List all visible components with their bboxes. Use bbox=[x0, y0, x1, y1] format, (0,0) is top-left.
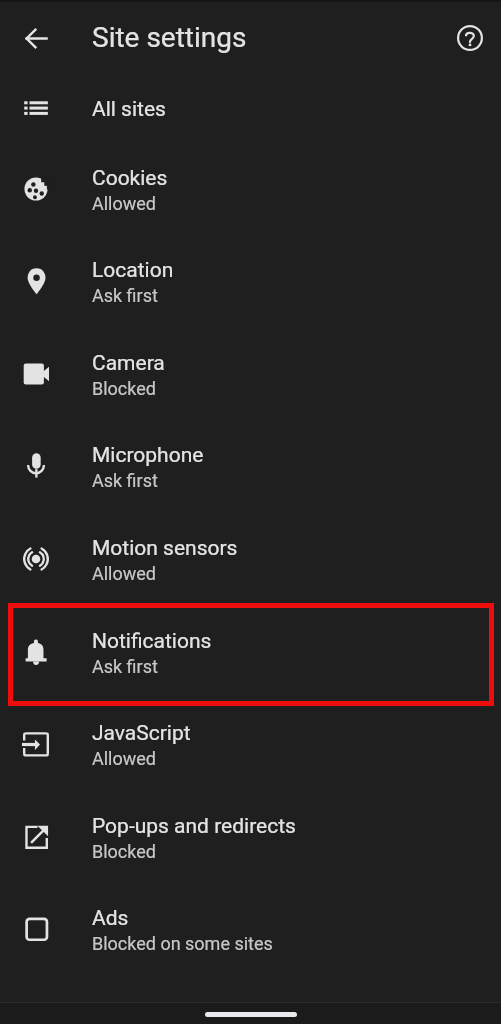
button[interactable]: Help and feedback bbox=[448, 16, 492, 60]
staticText: Microphone bbox=[92, 443, 204, 468]
button[interactable]: Pop-ups and redirects bbox=[0, 790, 501, 883]
button[interactable]: Notifications bbox=[0, 605, 501, 698]
staticText: Motion sensors bbox=[92, 536, 238, 561]
button[interactable]: Camera bbox=[0, 327, 501, 420]
staticText: Ask first bbox=[92, 656, 158, 677]
staticText: Blocked bbox=[92, 841, 156, 862]
staticText: Ask first bbox=[92, 285, 158, 306]
button[interactable]: Navigate up bbox=[14, 16, 58, 60]
staticText: Blocked on some sites bbox=[92, 933, 273, 954]
staticText: JavaScript bbox=[92, 721, 191, 746]
button[interactable]: Motion sensors bbox=[0, 512, 501, 605]
button[interactable]: JavaScript bbox=[0, 697, 501, 790]
button[interactable]: Cookies bbox=[0, 142, 501, 235]
staticText: Notifications bbox=[92, 629, 212, 654]
button[interactable]: Ads bbox=[0, 882, 501, 975]
staticText: Camera bbox=[92, 351, 165, 376]
button[interactable]: All sites bbox=[0, 74, 501, 142]
staticText: Pop-ups and redirects bbox=[92, 814, 296, 839]
staticText: Location bbox=[92, 258, 174, 283]
staticText: All sites bbox=[92, 97, 166, 122]
button[interactable]: Microphone bbox=[0, 419, 501, 512]
button[interactable]: Background sync bbox=[0, 975, 501, 1024]
staticText: Allowed bbox=[92, 563, 156, 584]
staticText: Ask first bbox=[92, 470, 158, 491]
staticText: Allowed bbox=[92, 748, 156, 769]
button[interactable]: Location bbox=[0, 234, 501, 327]
staticText: Site settings bbox=[92, 21, 247, 54]
staticText: Allowed bbox=[92, 193, 156, 214]
staticText: Cookies bbox=[92, 166, 168, 191]
staticText: Blocked bbox=[92, 378, 156, 399]
staticText: Ads bbox=[92, 906, 129, 931]
staticText: Background sync bbox=[92, 999, 253, 1024]
